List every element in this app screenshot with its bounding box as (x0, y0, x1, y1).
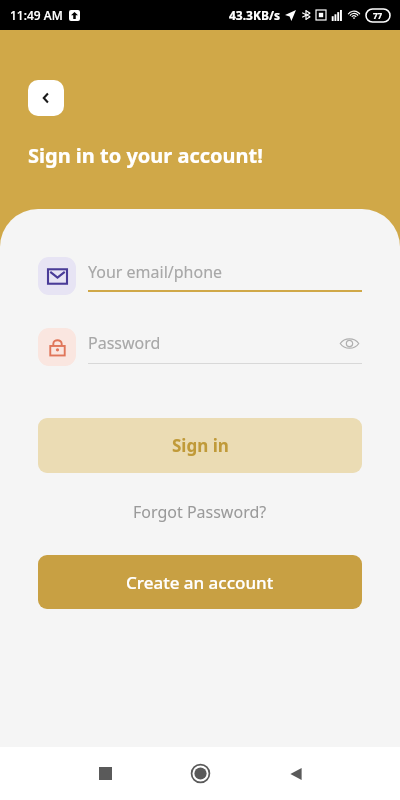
staticText: 11:49 AM (10, 7, 63, 23)
staticText: 43.3KB/s (229, 7, 280, 23)
button[interactable]: Create an account (38, 555, 362, 609)
staticText: Sign in to your account! (28, 142, 263, 169)
button[interactable]: Recent apps (58, 747, 153, 800)
staticText: 77 (373, 10, 383, 21)
button[interactable]: Home (153, 747, 248, 800)
button[interactable]: Password (38, 328, 362, 366)
button[interactable]: Your email/phone (38, 257, 362, 295)
staticText: Your email/phone (88, 261, 223, 283)
button[interactable]: Show password (336, 330, 362, 356)
button[interactable]: Back (248, 747, 343, 800)
button[interactable]: Sign in (38, 418, 362, 473)
staticText: Sign in (172, 434, 229, 457)
staticText: Create an account (126, 571, 274, 594)
button[interactable]: Back (28, 80, 64, 116)
button[interactable]: Forgot Password? (123, 496, 277, 528)
staticText: Forgot Password? (133, 501, 267, 523)
staticText: Password (88, 332, 161, 354)
